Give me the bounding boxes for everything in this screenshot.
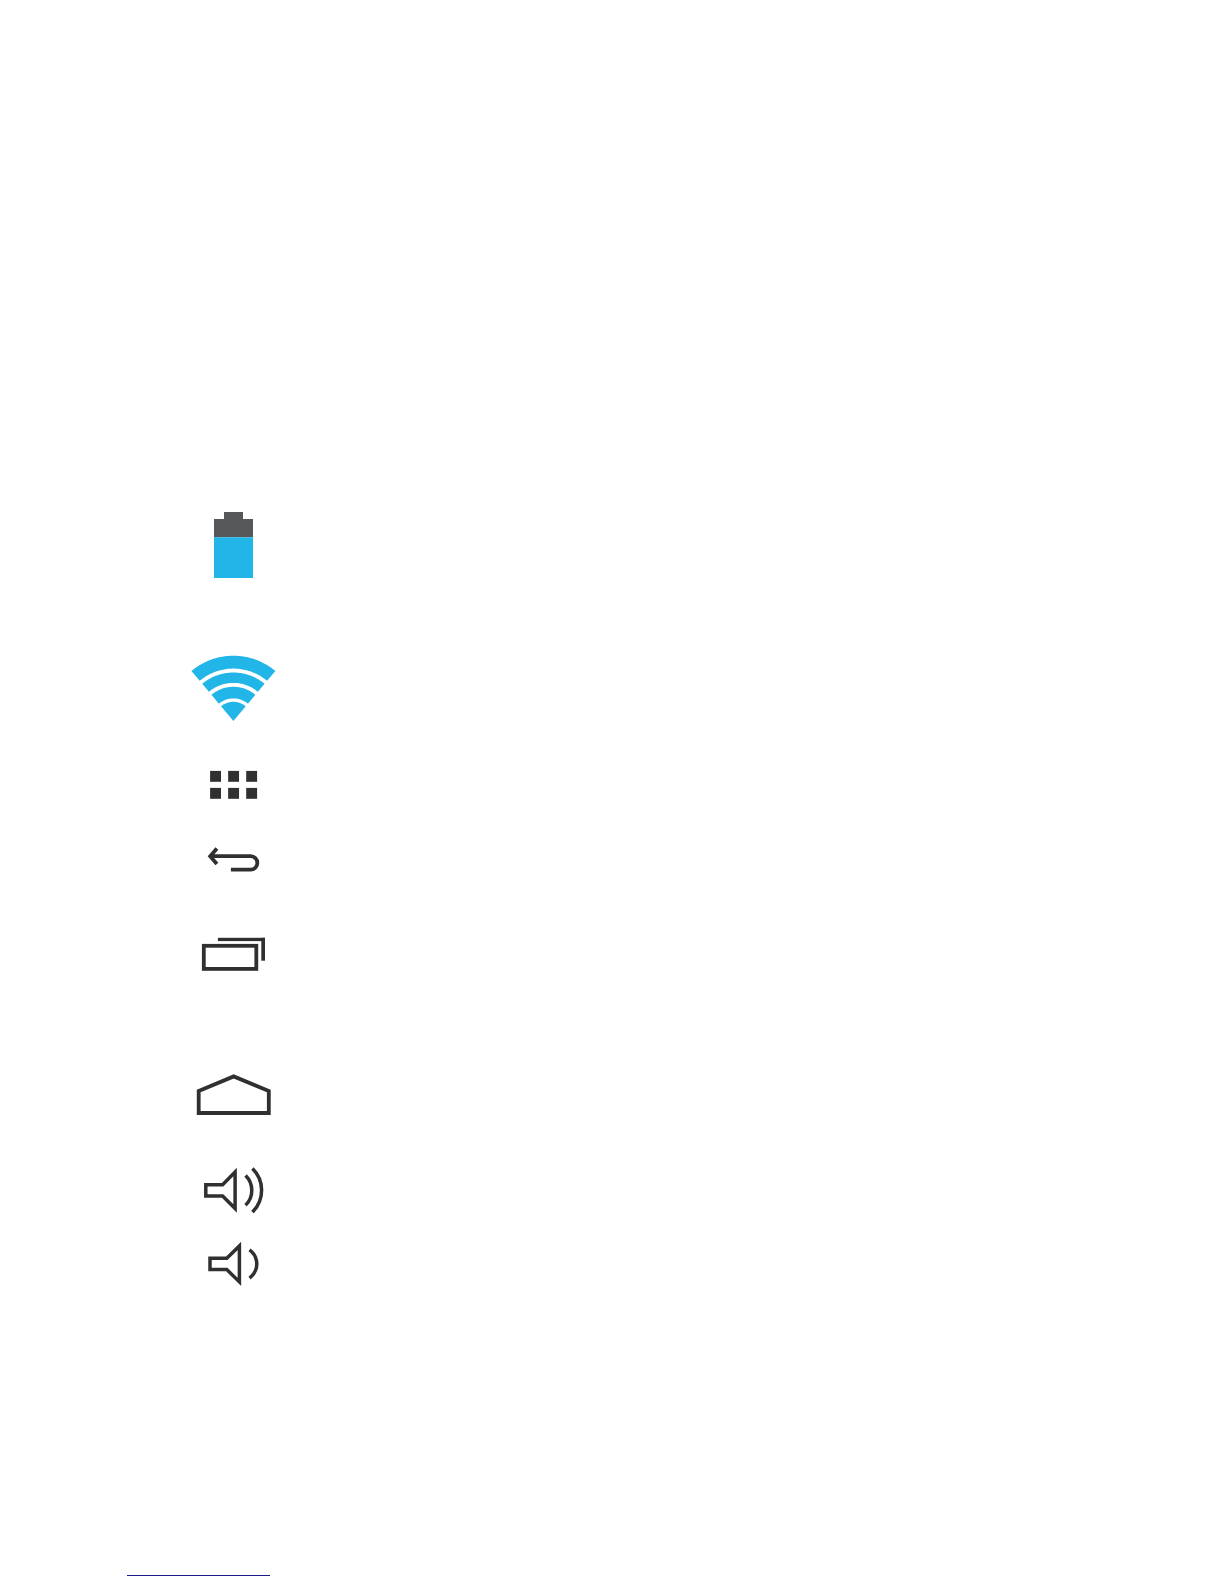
button[interactable]: Home	[192, 1068, 274, 1122]
button[interactable]: Wi-Fi signal	[186, 648, 282, 730]
button[interactable]: Recent apps	[196, 930, 270, 978]
button[interactable]: Volume up	[200, 1163, 270, 1219]
button[interactable]: All apps	[204, 765, 264, 807]
button[interactable]: Volume down	[200, 1237, 270, 1293]
button[interactable]: Battery level	[190, 505, 286, 601]
button[interactable]: Back	[202, 840, 264, 880]
